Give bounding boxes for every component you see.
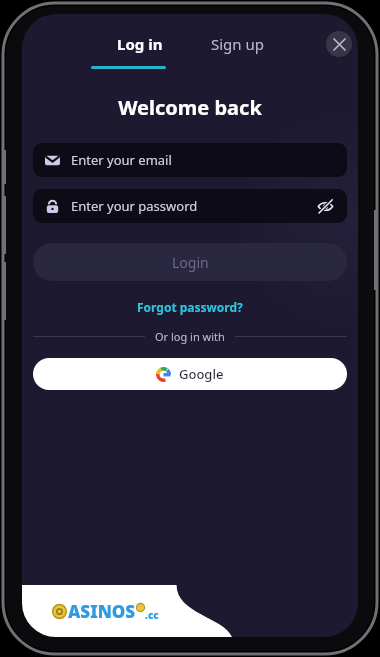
staticText: Or log in with bbox=[155, 329, 225, 344]
button[interactable]: Forgot password? bbox=[127, 295, 253, 319]
staticText: ASINOS bbox=[68, 600, 136, 623]
staticText: Login bbox=[172, 253, 209, 272]
staticText: .cc bbox=[145, 608, 159, 622]
staticText: Welcome back bbox=[22, 94, 358, 121]
button[interactable]: Enter your email bbox=[33, 143, 347, 177]
button[interactable]: Close bbox=[326, 31, 352, 57]
staticText: Forgot password? bbox=[137, 299, 243, 315]
button[interactable]: Show password bbox=[315, 196, 335, 216]
button[interactable]: Log in bbox=[105, 28, 175, 60]
button[interactable]: Sign up bbox=[199, 28, 276, 60]
button[interactable]: Enter your password bbox=[33, 189, 347, 223]
button[interactable]: Google bbox=[33, 358, 347, 390]
staticText: Enter your email bbox=[71, 151, 172, 169]
staticText: Sign up bbox=[211, 34, 264, 54]
staticText: Log in bbox=[117, 34, 163, 54]
button[interactable]: Login bbox=[33, 243, 347, 281]
staticText: Google bbox=[179, 365, 224, 383]
staticText: Enter your password bbox=[71, 197, 198, 215]
